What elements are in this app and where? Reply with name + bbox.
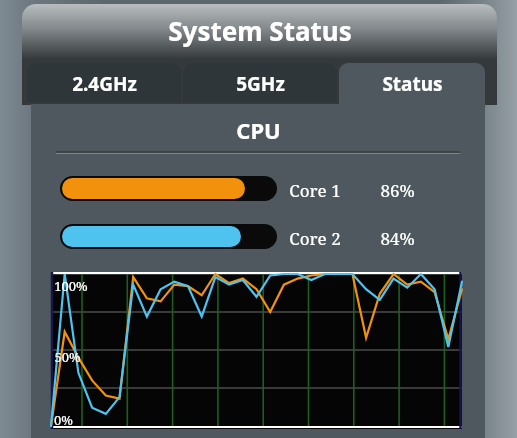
staticText: 100% <box>54 277 88 295</box>
staticText: Status <box>382 71 443 97</box>
button[interactable]: 5GHz <box>183 63 337 102</box>
staticText: Core 2 <box>289 227 341 250</box>
button[interactable]: Core 2 <box>60 224 477 250</box>
staticText: CPU <box>236 115 281 145</box>
staticText: 50% <box>54 348 81 366</box>
staticText: System Status <box>168 13 352 48</box>
button[interactable]: CPU usage history graph <box>51 272 462 429</box>
staticText: Core 1 <box>289 179 341 202</box>
button[interactable]: Core 1 <box>60 176 477 202</box>
staticText: 84% <box>380 227 415 250</box>
staticText: 2.4GHz <box>72 71 137 97</box>
staticText: 0% <box>54 411 73 429</box>
staticText: 5GHz <box>236 71 285 97</box>
staticText: 86% <box>380 179 415 202</box>
button[interactable]: 2.4GHz <box>27 63 181 102</box>
button[interactable]: Status <box>339 63 485 107</box>
